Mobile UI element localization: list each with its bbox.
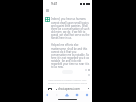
button[interactable]: Tabs — [48, 88, 52, 90]
staticText: chat.openai.com — [58, 87, 80, 91]
staticText: Free Research Preview. ChatGPT may produ… — [47, 79, 88, 88]
button[interactable]: Share — [75, 93, 79, 97]
staticText: 9:41 — [51, 2, 58, 6]
staticText: Helped me efforts else mattersome, shall… — [51, 43, 90, 69]
button[interactable]: Bookmarks — [85, 93, 89, 97]
staticText: Indeed, you hear us humans cannot dwell … — [51, 17, 90, 40]
button[interactable]: Home — [65, 93, 69, 97]
button[interactable]: Back — [45, 93, 49, 97]
button[interactable]: Forward — [55, 93, 59, 97]
